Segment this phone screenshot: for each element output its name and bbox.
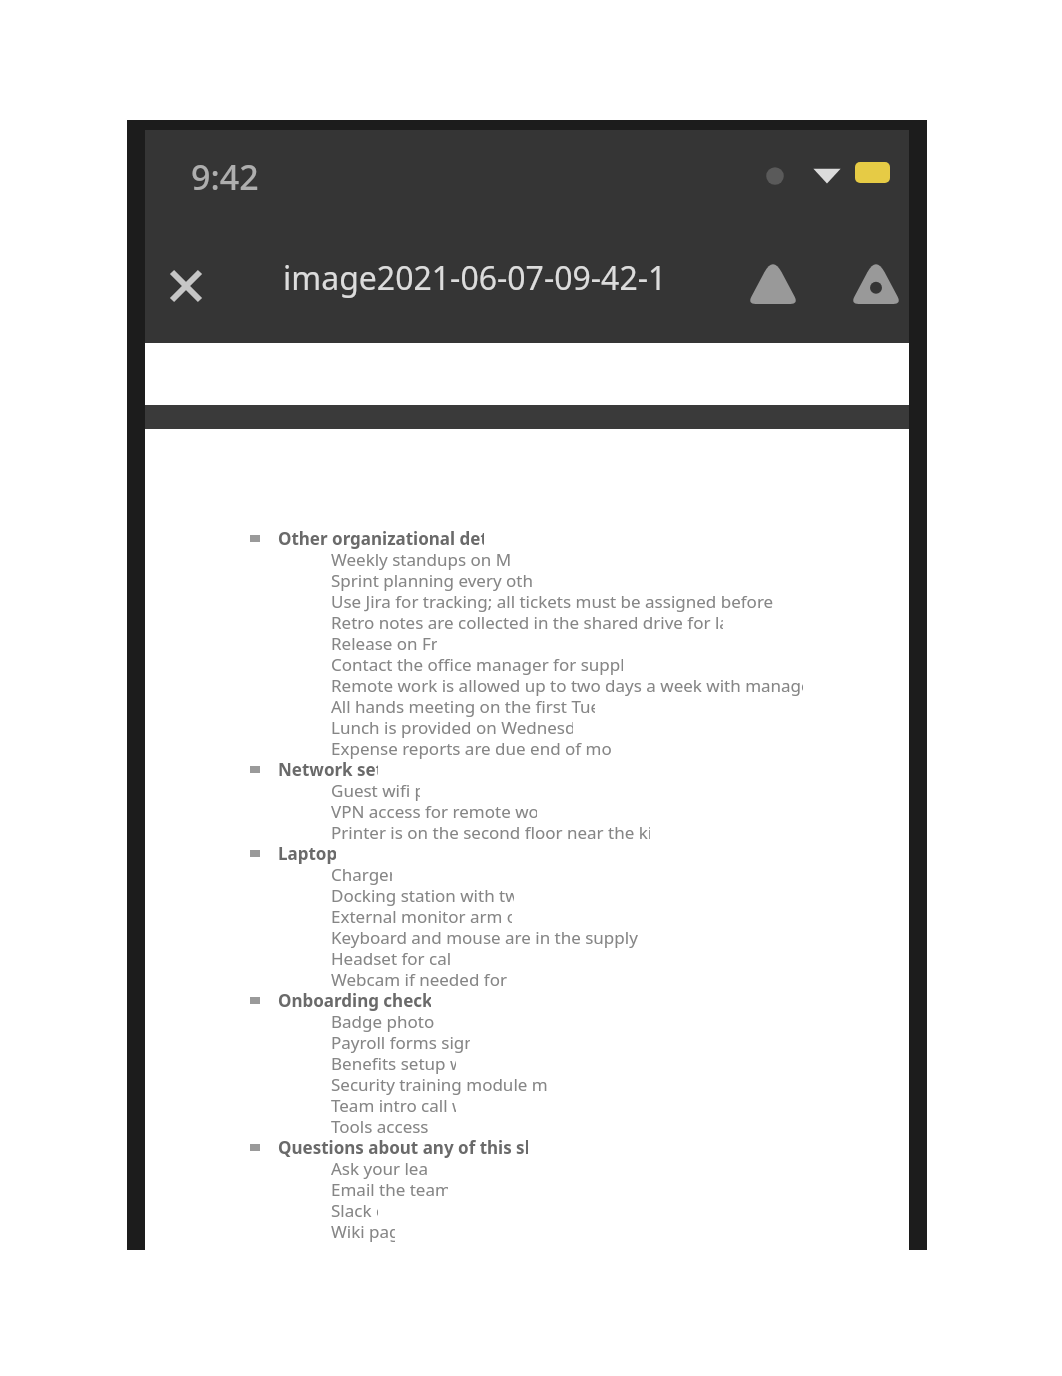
staticText: Network setup and access xyxy=(278,758,378,781)
staticText: Remote work is allowed up to two days a … xyxy=(331,674,803,697)
staticText: External monitor arm optional xyxy=(331,905,512,928)
staticText: Retro notes are collected in the shared … xyxy=(331,611,723,634)
button[interactable]: Close xyxy=(153,253,219,319)
button[interactable]: Share xyxy=(740,248,806,314)
staticText: Laptop gear xyxy=(278,842,336,865)
staticText: Lunch is provided on Wednesdays in the m… xyxy=(331,716,573,739)
staticText: Security training module must be done xyxy=(331,1073,548,1096)
staticText: Wiki page index xyxy=(331,1220,395,1243)
staticText: Weekly standups on Monday mornings at th… xyxy=(331,548,512,571)
staticText: Headset for calls xyxy=(331,947,450,970)
staticText: Release on Friday afternoons xyxy=(331,632,437,655)
staticText: Ask your lead first xyxy=(331,1157,428,1180)
staticText: Team intro call with peers xyxy=(331,1094,456,1117)
staticText: Payroll forms signed xyxy=(331,1031,470,1054)
staticText: VPN access for remote work is required xyxy=(331,800,537,823)
staticText: Printer is on the second floor near the … xyxy=(331,821,650,844)
staticText: image2021-06-07-09-42-13.png xyxy=(283,256,666,300)
staticText: Benefits setup window xyxy=(331,1052,456,1075)
staticText: Other organizational details that may ap… xyxy=(278,527,484,550)
button[interactable]: Save xyxy=(843,248,909,314)
staticText: Tools access request xyxy=(331,1115,431,1138)
staticText: Sprint planning every other week with th… xyxy=(331,569,534,592)
staticText: Expense reports are due end of month bef… xyxy=(331,737,612,760)
staticText: Slack channel xyxy=(331,1199,378,1222)
staticText: Email the team alias xyxy=(331,1178,448,1201)
staticText: Use Jira for tracking; all tickets must … xyxy=(331,590,773,613)
staticText: Webcam if needed for meetings xyxy=(331,968,509,991)
staticText: Questions about any of this should go to xyxy=(278,1136,528,1159)
staticText: All hands meeting on the first Tuesday o… xyxy=(331,695,595,718)
staticText: Contact the office manager for supplies … xyxy=(331,653,623,676)
staticText: Badge photo session xyxy=(331,1010,434,1033)
staticText: Onboarding checklist items xyxy=(278,989,431,1012)
staticText: Docking station with two ports xyxy=(331,884,514,907)
staticText: Keyboard and mouse are in the supply clo… xyxy=(331,926,642,949)
staticText: Charger and cable xyxy=(331,863,392,886)
staticText: Guest wifi password xyxy=(331,779,420,802)
staticText: 9:42 xyxy=(191,154,259,200)
